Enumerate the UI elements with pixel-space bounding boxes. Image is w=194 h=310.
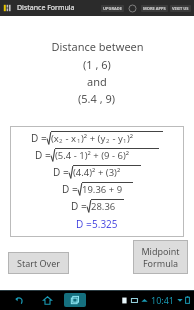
staticText: D = [71,199,87,213]
staticText: (x [51,132,59,145]
staticText: (1 , 6) [83,57,111,72]
button[interactable]: Start Over [8,252,69,274]
staticText: )² + (y [81,132,106,145]
staticText: and [87,74,107,89]
staticText: - y [110,132,123,145]
staticText: VISIT US [172,6,189,11]
staticText: (4.4)² + (3)² [73,166,121,179]
button[interactable]: Info [128,4,137,13]
staticText: 10:41 [151,294,175,306]
button[interactable]: MORE APPS [141,5,168,12]
staticText: 5.325 [92,217,118,231]
staticText: (5.4 , 9) [78,91,116,106]
staticText: Midpoint Formula [141,245,180,269]
staticText: 28.36 [91,200,116,213]
staticText: 1 [123,137,127,145]
staticText: Start Over [17,257,60,269]
staticText: )² [127,132,134,145]
button[interactable]: VISIT US [170,5,191,12]
staticText: D = [31,131,47,145]
staticText: Distance Formula [17,3,75,13]
staticText: (5.4 - 1)² + (9 - 6)² [55,149,130,162]
staticText: 2 [106,137,110,145]
staticText: 19.36 + 9 [82,183,123,196]
staticText: Distance between [51,39,144,54]
staticText: D = [35,148,51,162]
button[interactable]: Home [38,291,56,309]
staticText: D = [76,217,92,231]
staticText: - x [63,132,77,145]
staticText: D = [53,165,69,179]
staticText: 1 [77,137,81,145]
button[interactable]: UPGRADE [101,5,124,12]
button[interactable]: Midpoint Formula [133,240,188,274]
button[interactable]: Back [10,291,28,309]
staticText: MORE APPS [143,6,166,11]
staticText: UPGRADE [103,6,122,11]
staticText: 2 [59,137,63,145]
button[interactable]: Recent apps [64,293,86,307]
staticText: D = [62,182,78,196]
